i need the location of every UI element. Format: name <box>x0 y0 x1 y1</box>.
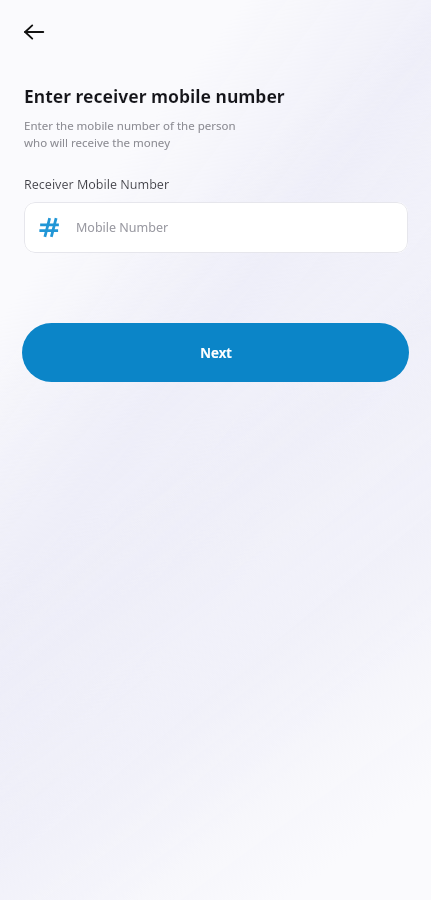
staticText: Enter the mobile number of the person wh… <box>24 118 236 150</box>
staticText: Mobile Number <box>76 219 169 236</box>
button[interactable]: Mobile Number <box>24 202 408 253</box>
staticText: Next <box>200 344 232 362</box>
staticText: Enter receiver mobile number <box>24 84 285 108</box>
staticText: Receiver Mobile Number <box>24 176 170 193</box>
button[interactable]: Next <box>22 323 409 382</box>
button[interactable]: Back <box>14 12 54 52</box>
